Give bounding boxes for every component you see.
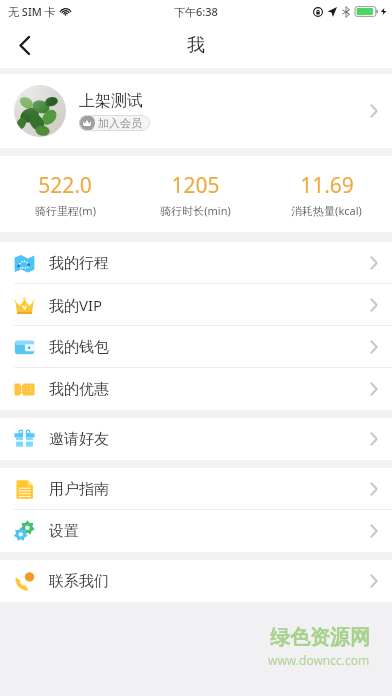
button[interactable]: 上架测试: [0, 74, 392, 148]
staticText: 用户指南: [49, 480, 109, 499]
staticText: 我的VIP: [49, 295, 103, 315]
button[interactable]: 我的VIP: [0, 284, 392, 326]
staticText: 骑行里程(m): [35, 203, 96, 218]
staticText: 我的行程: [49, 254, 109, 273]
staticText: 我的钱包: [49, 338, 109, 357]
staticText: 骑行时长(min): [160, 203, 231, 218]
button[interactable]: Back: [0, 22, 48, 68]
staticText: 1205: [171, 171, 220, 200]
staticText: 消耗热量(kcal): [291, 203, 362, 218]
staticText: 上架测试: [79, 91, 143, 111]
staticText: 我: [187, 34, 205, 57]
button[interactable]: 我的行程: [0, 242, 392, 284]
staticText: 加入会员: [98, 116, 142, 130]
staticText: 设置: [49, 522, 79, 541]
staticText: 522.0: [38, 171, 92, 200]
button[interactable]: 用户指南: [0, 468, 392, 510]
button[interactable]: 我的钱包: [0, 326, 392, 368]
staticText: 无 SIM 卡: [8, 4, 56, 19]
staticText: 11.69: [300, 171, 354, 200]
staticText: www.downcc.com: [268, 652, 370, 668]
staticText: 联系我们: [49, 572, 109, 591]
button[interactable]: 设置: [0, 510, 392, 552]
staticText: 我的优惠: [49, 380, 109, 399]
staticText: 绿色资源网: [270, 625, 370, 650]
button[interactable]: 我的优惠: [0, 368, 392, 410]
button[interactable]: 联系我们: [0, 560, 392, 602]
button[interactable]: 邀请好友: [0, 418, 392, 460]
staticText: 下午6:38: [174, 4, 218, 19]
staticText: 邀请好友: [49, 430, 109, 449]
